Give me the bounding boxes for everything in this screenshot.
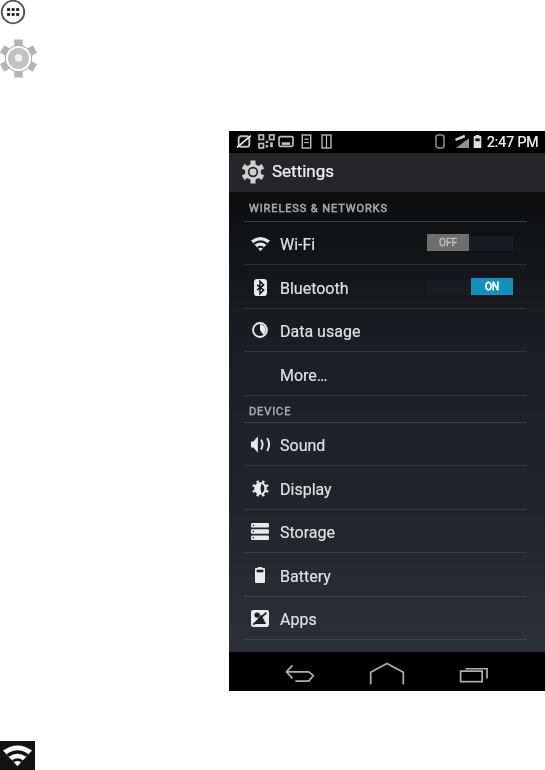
- button[interactable]: Home: [369, 655, 405, 691]
- button[interactable]: Apps: [229, 596, 545, 640]
- staticText: DEVICE: [249, 405, 292, 418]
- staticText: Display: [280, 480, 332, 499]
- button[interactable]: Back: [281, 655, 317, 691]
- staticText: OFF: [439, 237, 457, 249]
- staticText: More…: [280, 366, 328, 385]
- button[interactable]: Wi-Fi: [229, 221, 545, 265]
- button[interactable]: Storage: [229, 509, 545, 553]
- button[interactable]: Data usage: [229, 308, 545, 352]
- button[interactable]: All apps: [1, 0, 25, 24]
- staticText: 2:47 PM: [487, 134, 539, 150]
- button[interactable]: Battery: [229, 553, 545, 597]
- button[interactable]: Display: [229, 466, 545, 510]
- button[interactable]: Wi-Fi: [0, 741, 35, 770]
- staticText: Bluetooth: [280, 279, 349, 298]
- staticText: Data usage: [280, 322, 361, 341]
- button[interactable]: More…: [229, 352, 545, 396]
- button[interactable]: OFF: [427, 232, 513, 254]
- staticText: WIRELESS & NETWORKS: [249, 202, 388, 215]
- staticText: Battery: [280, 567, 331, 586]
- button[interactable]: Settings: [229, 153, 545, 192]
- staticText: ON: [485, 281, 500, 293]
- button[interactable]: Bluetooth: [229, 265, 545, 309]
- button[interactable]: Settings: [0, 39, 38, 78]
- staticText: Sound: [280, 436, 326, 455]
- staticText: Settings: [272, 161, 335, 181]
- staticText: Apps: [280, 610, 317, 629]
- staticText: Wi-Fi: [280, 235, 316, 254]
- button[interactable]: Sound: [229, 422, 545, 466]
- staticText: Storage: [280, 523, 335, 542]
- button[interactable]: Recent apps: [457, 655, 493, 691]
- button[interactable]: ON: [427, 276, 513, 298]
